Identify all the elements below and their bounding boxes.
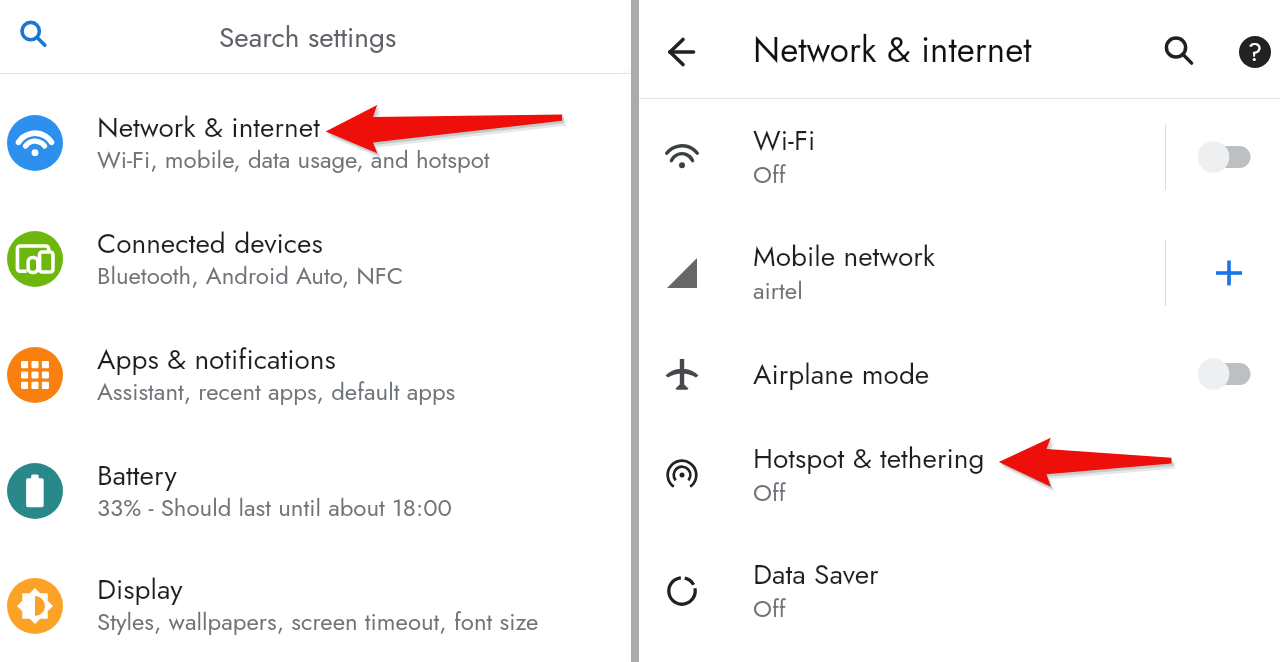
staticText: Styles, wallpapers, screen timeout, font… [97, 604, 539, 639]
staticText: Off [753, 591, 786, 626]
staticText: Network & internet [97, 107, 320, 147]
staticText: ? [1248, 34, 1262, 70]
staticText: 33% - Should last until about 18:00 [97, 490, 452, 525]
button[interactable]: Network & internet [0, 85, 631, 201]
staticText: Connected devices [97, 223, 323, 263]
staticText: airtel [753, 273, 803, 308]
button[interactable]: Search [1153, 28, 1201, 76]
button[interactable]: Toggle Wi-Fi [1185, 133, 1265, 181]
other: Search [14, 18, 52, 56]
button[interactable]: Battery [0, 433, 631, 549]
button[interactable]: Hotspot & tethering [639, 417, 1280, 533]
staticText: Display [97, 569, 183, 609]
staticText: Data Saver [753, 554, 879, 594]
staticText: Network & internet [753, 25, 1032, 76]
staticText: Apps & notifications [97, 339, 336, 379]
staticText: Battery [97, 455, 177, 495]
button[interactable]: Add network [1205, 249, 1253, 297]
button[interactable]: Wi-Fi [639, 99, 1280, 215]
staticText: Mobile network [753, 236, 936, 276]
button[interactable]: Display [0, 549, 631, 662]
staticText: Off [753, 157, 786, 192]
button[interactable]: Mobile network [639, 215, 1280, 331]
button[interactable]: Back [658, 28, 706, 76]
staticText: Search settings [219, 17, 397, 57]
button[interactable]: Help [1231, 28, 1279, 76]
staticText: Wi-Fi [753, 120, 816, 160]
button[interactable]: Apps & notifications [0, 317, 631, 433]
button[interactable]: Data Saver [639, 533, 1280, 649]
staticText: Wi-Fi, mobile, data usage, and hotspot [97, 142, 490, 177]
staticText: Airplane mode [753, 354, 930, 394]
button[interactable]: Toggle Airplane mode [1185, 350, 1265, 398]
staticText: Off [753, 475, 786, 510]
staticText: Hotspot & tethering [753, 438, 985, 478]
button[interactable]: Connected devices [0, 201, 631, 317]
button[interactable]: Search [0, 0, 631, 73]
staticText: Assistant, recent apps, default apps [97, 374, 456, 409]
staticText: Bluetooth, Android Auto, NFC [97, 258, 404, 293]
button[interactable]: Airplane mode [639, 331, 1280, 417]
